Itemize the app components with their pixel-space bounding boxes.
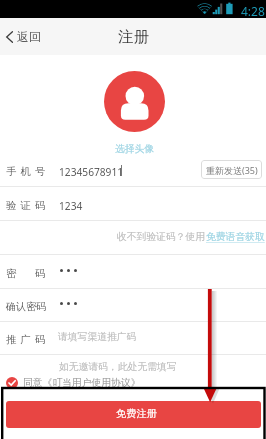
staticText: 1234 bbox=[59, 199, 83, 213]
staticText: 推广码 bbox=[6, 333, 50, 346]
staticText: 收不到验证码？使用 bbox=[117, 231, 206, 243]
button[interactable]: 验证码 bbox=[0, 186, 266, 220]
staticText: 4:28 bbox=[241, 3, 265, 19]
staticText: 返回 bbox=[17, 29, 41, 44]
button[interactable]: 推广码 bbox=[0, 321, 266, 354]
button[interactable]: 重新发送(35) bbox=[201, 160, 262, 179]
staticText: 确认密码 bbox=[6, 300, 46, 313]
staticText: 请填写渠道推广码 bbox=[58, 331, 137, 343]
button[interactable]: 返回 bbox=[0, 23, 51, 50]
button[interactable]: 选择头像 bbox=[104, 71, 165, 132]
button[interactable]: 确认密码 bbox=[0, 288, 266, 321]
staticText: 同意《叮当用户使用协议》 bbox=[23, 377, 141, 389]
button[interactable]: 密码 bbox=[0, 254, 266, 288]
button[interactable]: 手机号 bbox=[0, 152, 266, 186]
staticText: 如无邀请码，此处无需填写 bbox=[59, 361, 177, 373]
button[interactable]: 免费语音获取 bbox=[206, 231, 265, 243]
staticText: 密码 bbox=[6, 267, 65, 280]
button[interactable]: 免费注册 bbox=[6, 401, 261, 428]
staticText: 12345678911 bbox=[59, 165, 124, 179]
button[interactable]: 同意《叮当用户使用协议》 bbox=[0, 375, 266, 391]
button[interactable]: 选择头像 bbox=[115, 143, 155, 155]
staticText: 注册 bbox=[118, 27, 149, 47]
staticText: 免费注册 bbox=[116, 407, 157, 420]
staticText: 重新发送(35) bbox=[206, 164, 258, 176]
staticText: 验证码 bbox=[6, 199, 50, 212]
staticText: 手机号 bbox=[6, 165, 50, 178]
